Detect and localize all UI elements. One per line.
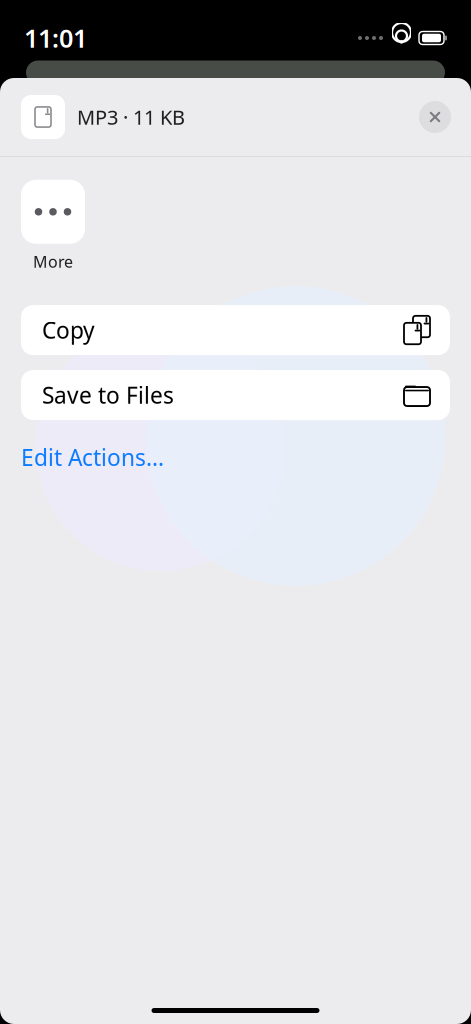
staticText: Edit Actions...: [21, 442, 164, 472]
staticText: Copy: [42, 315, 95, 345]
staticText: Save to Files: [42, 380, 174, 410]
button[interactable]: More: [21, 180, 85, 272]
button[interactable]: Copy: [21, 305, 450, 355]
button[interactable]: Close: [413, 95, 457, 139]
button[interactable]: Edit Actions...: [21, 436, 164, 478]
staticText: MP3 · 11 KB: [77, 104, 185, 130]
button[interactable]: Save to Files: [21, 370, 450, 420]
staticText: 11:01: [24, 21, 87, 55]
staticText: More: [33, 251, 73, 272]
